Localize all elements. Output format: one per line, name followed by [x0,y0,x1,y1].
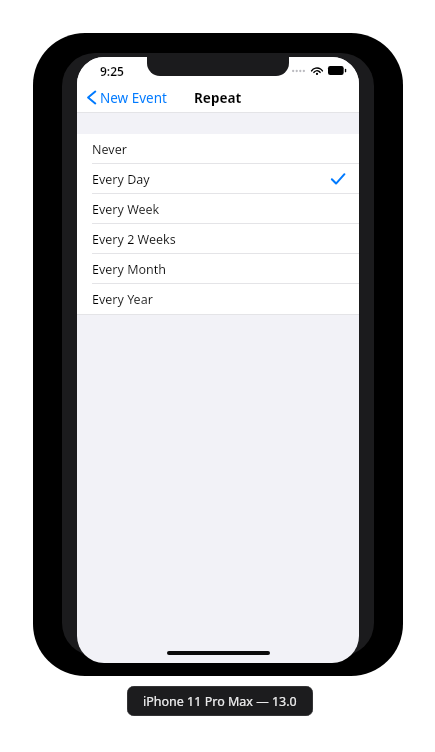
button[interactable]: New Event [77,82,175,113]
staticText: Every 2 Weeks [92,231,176,248]
button[interactable]: Every 2 Weeks [77,224,359,254]
staticText: Repeat [194,89,242,107]
button[interactable]: Never [77,134,359,164]
button[interactable]: Every Year [77,284,359,314]
staticText: Every Month [92,261,167,278]
button[interactable]: Every Month [77,254,359,284]
button[interactable]: Every Day [77,164,359,194]
staticText: Every Week [92,201,160,218]
staticText: 9:25 [100,63,124,79]
staticText: iPhone 11 Pro Max — 13.0 [143,693,297,710]
other: Selected [331,173,345,185]
staticText: New Event [100,89,167,107]
staticText: Every Day [92,171,150,188]
button[interactable]: Every Week [77,194,359,224]
staticText: Never [92,141,127,158]
button[interactable]: iPhone 11 Pro Max — 13.0 [127,686,313,716]
staticText: Every Year [92,291,153,308]
